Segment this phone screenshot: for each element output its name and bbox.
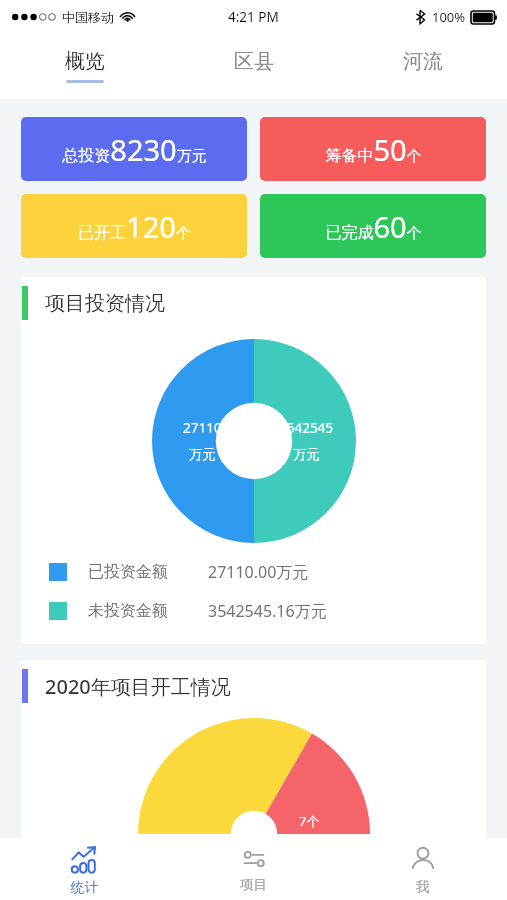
- staticText: 3542545.16万元: [208, 600, 327, 622]
- staticText: 已开工120个: [78, 207, 191, 246]
- button[interactable]: 统计: [0, 838, 169, 900]
- button[interactable]: 河流: [338, 33, 507, 99]
- button[interactable]: 概览: [0, 33, 169, 99]
- staticText: 未投资金额: [88, 601, 168, 621]
- staticText: 我: [416, 878, 430, 895]
- button[interactable]: 总投资8230万元: [21, 117, 247, 181]
- staticText: 中国移动: [62, 9, 114, 25]
- staticText: 筹备中50个: [325, 130, 422, 169]
- staticText: 3542545: [279, 419, 334, 437]
- staticText: 27110.00万元: [208, 561, 309, 583]
- staticText: 27110: [183, 419, 222, 437]
- staticText: 7个: [299, 812, 320, 830]
- button[interactable]: 项目: [169, 838, 338, 900]
- staticText: 总投资8230万元: [62, 130, 207, 169]
- staticText: 统计: [71, 879, 98, 896]
- staticText: 项目: [240, 876, 267, 893]
- staticText: 已投资金额: [88, 562, 168, 582]
- staticText: 项目投资情况: [45, 291, 165, 316]
- button[interactable]: 区县: [169, 33, 338, 99]
- staticText: 100%: [432, 8, 466, 26]
- staticText: 区县: [234, 49, 274, 74]
- other: 项目: [241, 846, 267, 872]
- staticText: 2020年项目开工情况: [45, 673, 231, 700]
- staticText: 4:21 PM: [228, 8, 279, 26]
- staticText: 万元: [293, 446, 320, 463]
- staticText: 概览: [65, 49, 105, 74]
- button[interactable]: 已开工120个: [21, 194, 247, 258]
- staticText: 已完成60个: [325, 207, 422, 246]
- button[interactable]: 已完成60个: [260, 194, 486, 258]
- other: 我: [409, 846, 437, 874]
- other: 统计: [70, 846, 99, 875]
- button[interactable]: 筹备中50个: [260, 117, 486, 181]
- staticText: 万元: [189, 446, 216, 463]
- button[interactable]: 我: [338, 838, 507, 900]
- staticText: 河流: [403, 49, 443, 74]
